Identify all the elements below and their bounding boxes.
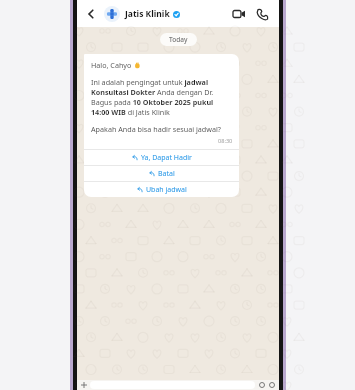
staticText: Ini adalah pengingat untuk jadwal Konsul…	[91, 77, 233, 117]
staticText: Ubah jadwal	[146, 185, 187, 195]
button[interactable]: Jatis Klinik	[104, 6, 230, 22]
button[interactable]: Back	[83, 6, 99, 22]
button[interactable]: Ya, Dapat Hadir	[84, 150, 239, 165]
button[interactable]: Batal	[84, 166, 239, 181]
button[interactable]: Voice call	[253, 5, 271, 23]
button[interactable]: Video call	[230, 5, 248, 23]
staticText: Ya, Dapat Hadir	[141, 153, 192, 163]
staticText: Jatis Klinik	[125, 8, 170, 20]
staticText: Today	[169, 35, 188, 44]
staticText: Halo, Cahyo	[91, 60, 134, 70]
staticText: Apakah Anda bisa hadir sesuai jadwal?	[91, 124, 221, 134]
staticText: 08:30	[218, 137, 233, 145]
staticText: Batal	[158, 169, 175, 179]
button[interactable]: Ubah jadwal	[84, 182, 239, 197]
